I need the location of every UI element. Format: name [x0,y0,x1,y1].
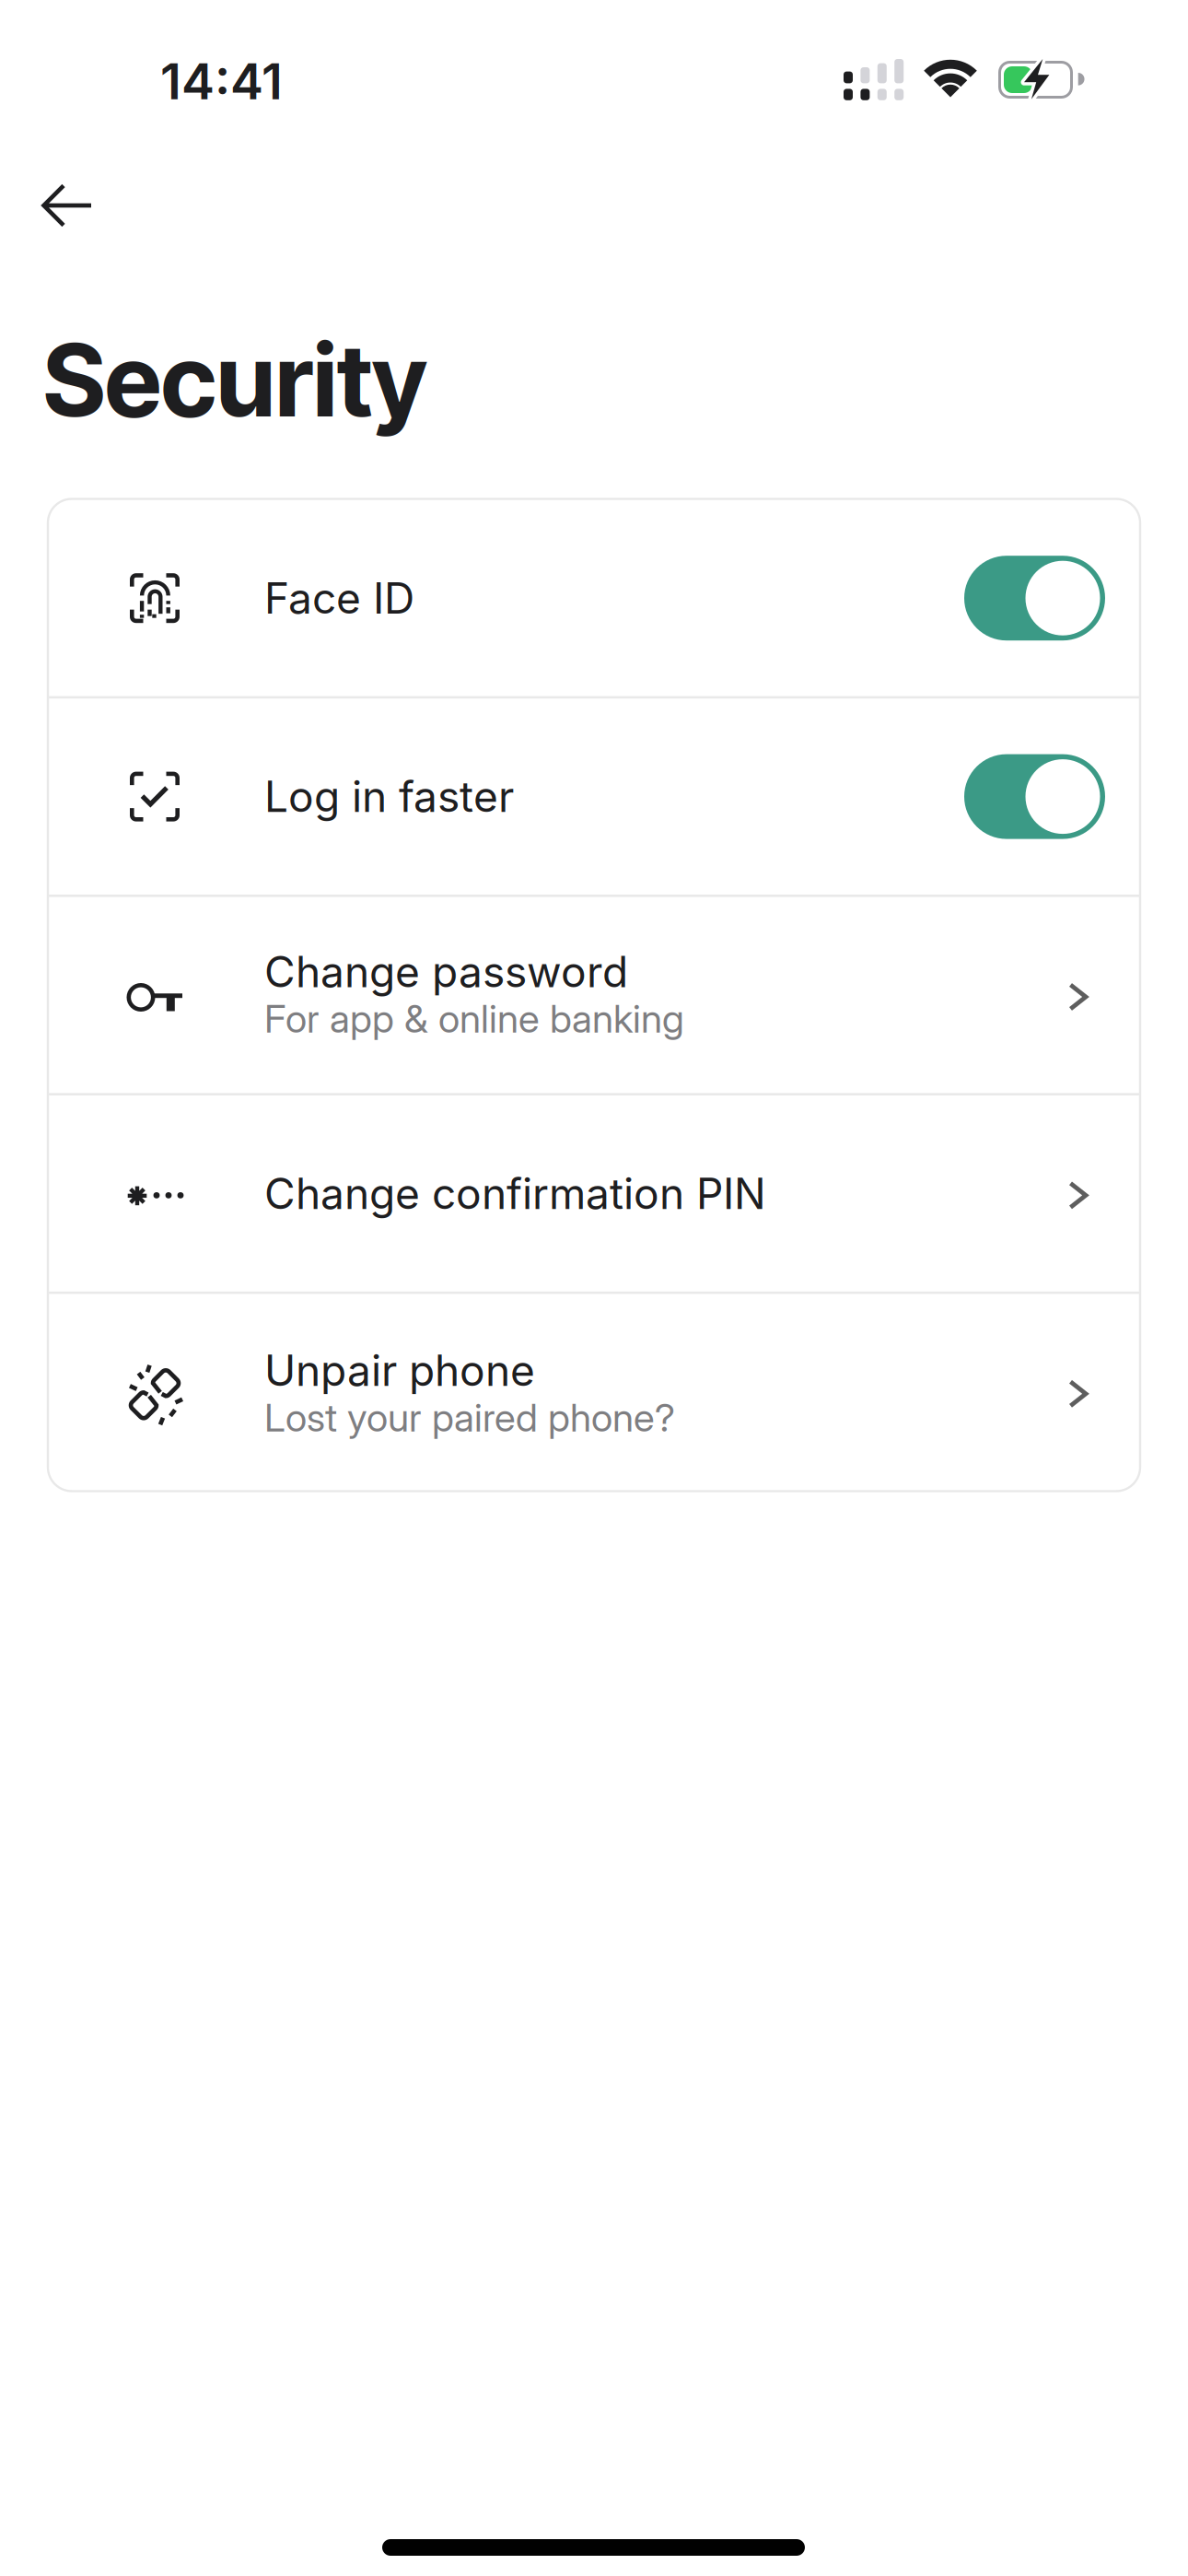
button[interactable]: Log in faster [964,754,1105,839]
staticText: Unpair phone [264,1345,535,1396]
staticText: Change confirmation PIN [264,1168,766,1219]
staticText: Security [43,320,427,440]
staticText: For app & online banking [264,995,684,1042]
button[interactable]: Unpair phone [48,1293,1140,1491]
staticText: Lost your paired phone? [264,1394,675,1441]
button[interactable]: Back [41,184,93,227]
button[interactable]: Change password [48,896,1140,1094]
staticText: Face ID [264,573,414,624]
button[interactable]: Change confirmation PIN [48,1094,1140,1293]
staticText: 14:41 [160,51,283,111]
staticText: Change password [264,946,628,998]
staticText: Log in faster [264,771,514,822]
button[interactable]: Face ID [964,556,1105,640]
